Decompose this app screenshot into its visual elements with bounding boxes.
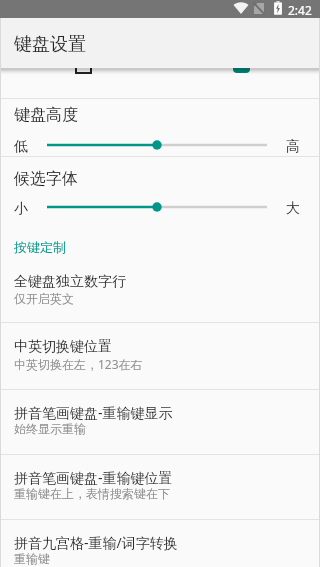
staticText: 小	[14, 200, 28, 218]
staticText: 重输键	[14, 551, 50, 566]
staticText: 拼音笔画键盘-重输键位置	[14, 468, 173, 487]
button[interactable]: 拼音笔画键盘-重输键位置	[0, 462, 320, 508]
staticText: 2:42	[288, 2, 312, 18]
staticText: 高	[286, 138, 300, 156]
staticText: 键盘按键音	[14, 46, 94, 66]
staticText: 拼音笔画键盘-重输键显示	[14, 403, 173, 422]
staticText: 键盘高度	[14, 105, 78, 125]
staticText: 中英切换在左，123在右	[14, 356, 143, 372]
staticText: 中英切换键位置	[14, 338, 112, 356]
button[interactable]: 拼音九宫格-重输/词字转换	[0, 527, 320, 567]
staticText: 仅开启英文	[14, 291, 74, 306]
button[interactable]: 全键盘独立数字行	[0, 267, 320, 313]
staticText: 大	[286, 200, 300, 218]
staticText: 低	[14, 138, 28, 156]
staticText: 重输键在上，表情搜索键在下	[14, 486, 170, 501]
button[interactable]: 中英切换键位置	[0, 332, 320, 378]
staticText: 候选字体	[14, 169, 78, 189]
button[interactable]: 低	[0, 133, 320, 157]
button[interactable]: 小	[0, 195, 320, 219]
staticText: 全键盘独立数字行	[14, 273, 126, 291]
staticText: 拼音九宫格-重输/词字转换	[14, 533, 178, 552]
button[interactable]: 键盘按键音	[0, 40, 320, 98]
staticText: 按键定制	[14, 239, 66, 255]
button[interactable]: 拼音笔画键盘-重输键显示	[0, 397, 320, 443]
staticText: 键盘设置	[14, 33, 86, 56]
staticText: 始终显示重输	[14, 421, 86, 436]
